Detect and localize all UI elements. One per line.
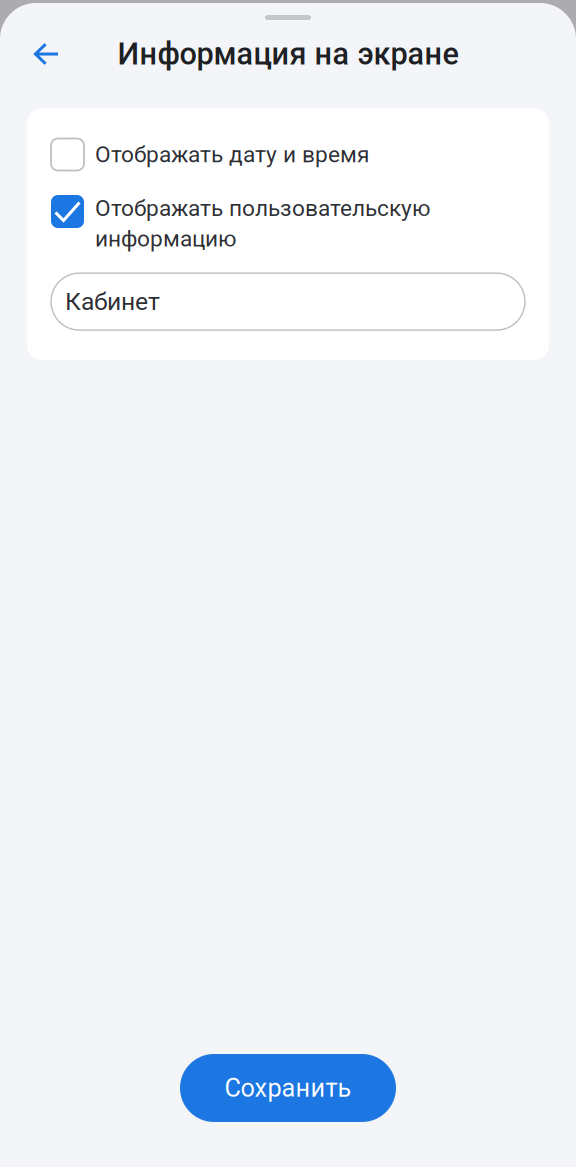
staticText: Отображать пользовательскую информацию bbox=[95, 195, 431, 252]
button[interactable]: Кабинет bbox=[51, 273, 525, 330]
button[interactable]: Отображать пользовательскую информацию bbox=[51, 195, 525, 252]
staticText: Кабинет bbox=[65, 287, 160, 316]
button[interactable]: Отображать дату и время bbox=[51, 138, 525, 171]
button[interactable]: Назад bbox=[0, 28, 76, 80]
button[interactable]: Сохранить bbox=[180, 1054, 396, 1122]
staticText: Информация на экране bbox=[117, 36, 458, 72]
staticText: Отображать дату и время bbox=[95, 141, 369, 168]
staticText: Сохранить bbox=[224, 1073, 351, 1103]
